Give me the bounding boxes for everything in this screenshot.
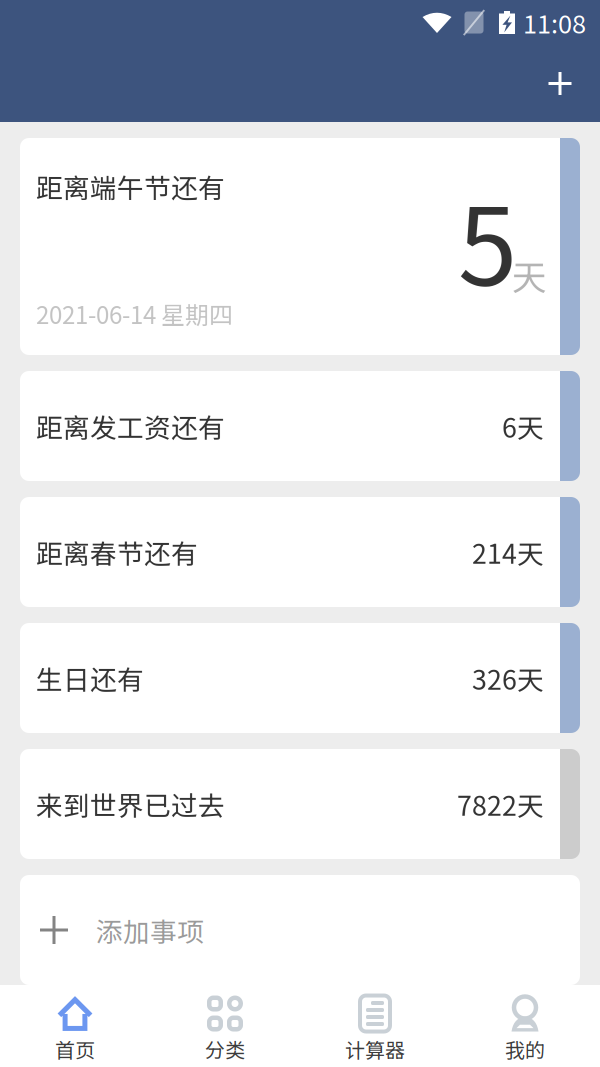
button[interactable]: 首页 xyxy=(0,979,150,1067)
staticText: 11:08 xyxy=(523,4,586,41)
staticText: 天 xyxy=(512,250,547,300)
staticText: 计算器 xyxy=(345,1034,405,1063)
staticText: 7822天 xyxy=(457,785,544,823)
button[interactable]: 计算器 xyxy=(300,979,450,1067)
staticText: 添加事项 xyxy=(96,911,204,949)
staticText: 距离端午节还有 xyxy=(36,167,225,206)
button[interactable]: Add event xyxy=(532,55,588,111)
staticText: 生日还有 xyxy=(36,659,144,697)
button[interactable]: 分类 xyxy=(150,979,300,1067)
button[interactable]: 距离春节还有 xyxy=(20,497,580,607)
staticText: 距离发工资还有 xyxy=(36,407,225,445)
button[interactable]: 距离端午节还有 xyxy=(20,138,580,355)
button[interactable]: 距离发工资还有 xyxy=(20,371,580,481)
staticText: 2021-06-14 星期四 xyxy=(36,296,233,331)
staticText: 距离春节还有 xyxy=(36,533,198,571)
staticText: 5 xyxy=(458,162,517,316)
staticText: 来到世界已过去 xyxy=(36,785,225,823)
staticText: 326天 xyxy=(472,659,544,697)
staticText: 6天 xyxy=(502,407,544,445)
button[interactable]: 生日还有 xyxy=(20,623,580,733)
staticText: 首页 xyxy=(55,1034,95,1063)
staticText: 我的 xyxy=(505,1034,545,1063)
button[interactable]: 添加事项 xyxy=(20,875,580,985)
staticText: 分类 xyxy=(205,1034,245,1063)
button[interactable]: 来到世界已过去 xyxy=(20,749,580,859)
staticText: 214天 xyxy=(472,533,544,571)
button[interactable]: 我的 xyxy=(450,979,600,1067)
